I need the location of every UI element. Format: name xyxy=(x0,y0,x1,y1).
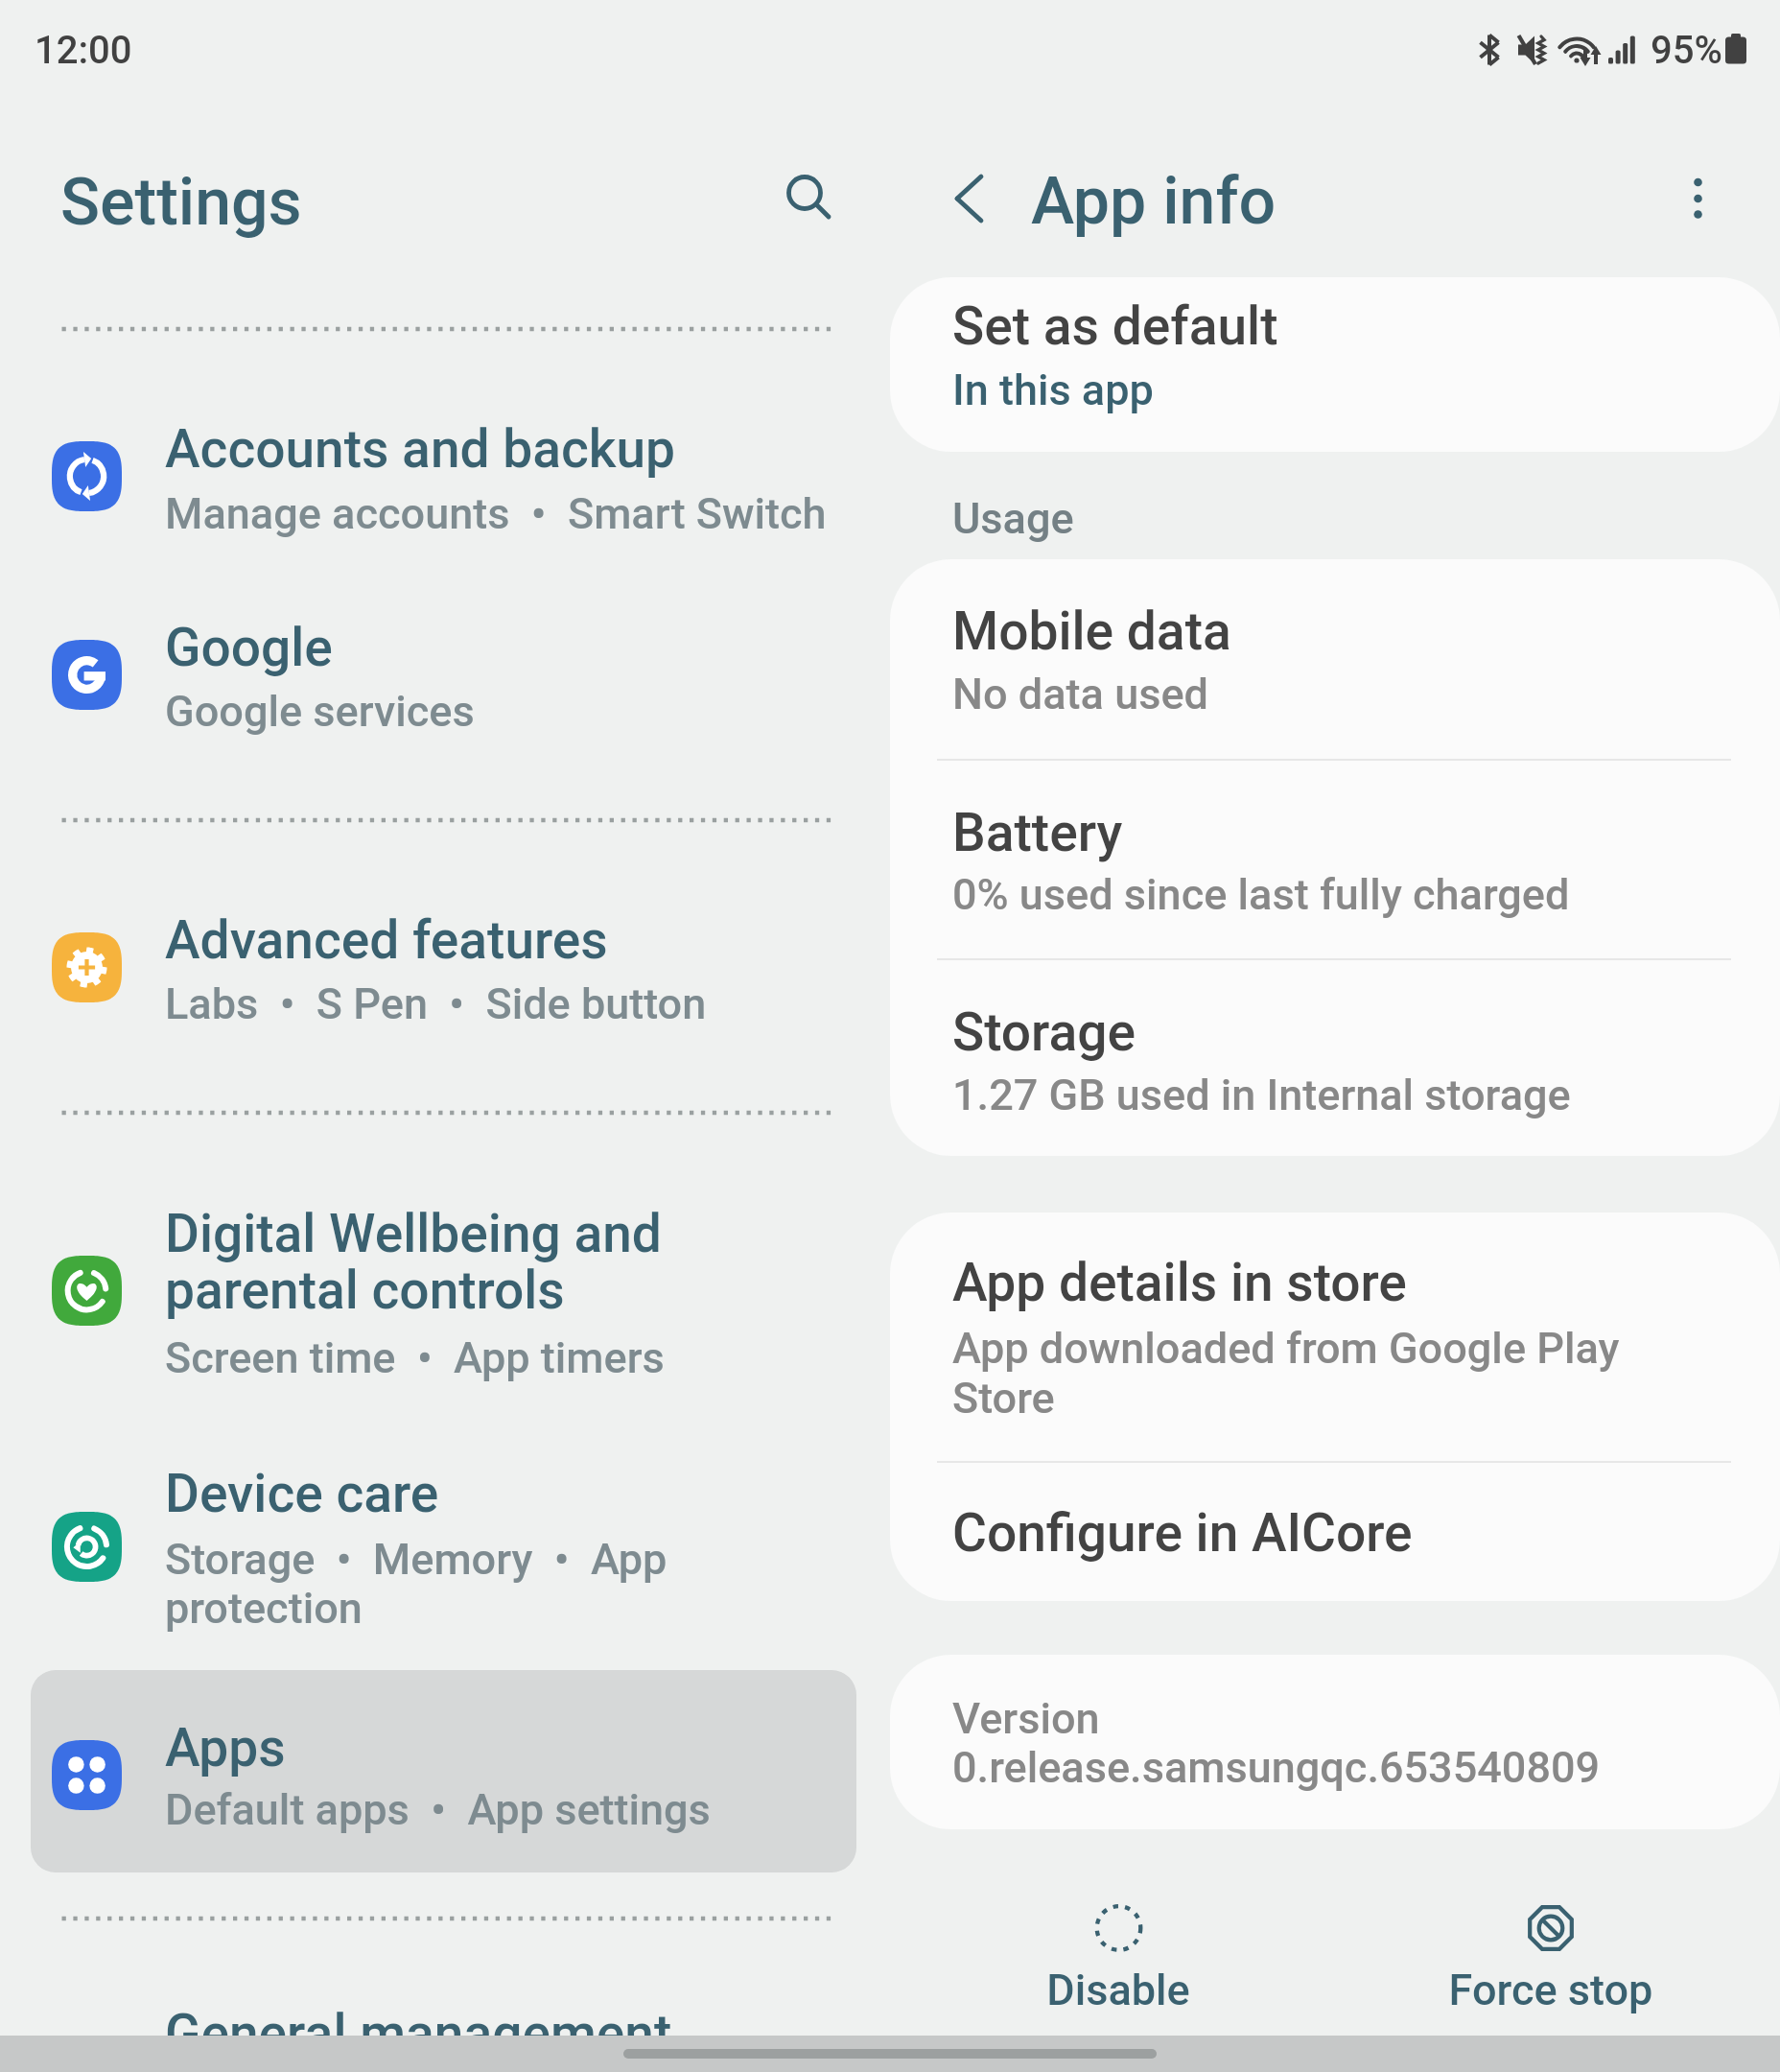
staticText: 0% used since last fully charged xyxy=(952,869,1570,920)
button[interactable]: More options xyxy=(1658,158,1739,239)
staticText: Screen time • App timers xyxy=(165,1332,665,1383)
staticText: Google services xyxy=(165,686,475,737)
staticText: Storage xyxy=(952,1001,1136,1063)
staticText: App info xyxy=(1031,163,1276,240)
button[interactable]: Force stop xyxy=(1391,1880,1710,2034)
staticText: Storage • Memory • App xyxy=(165,1534,667,1585)
staticText: Usage xyxy=(952,493,1074,544)
button[interactable] xyxy=(31,607,856,746)
staticText: Battery xyxy=(952,802,1123,863)
staticText: Manage accounts • Smart Switch xyxy=(165,488,827,539)
staticText: Digital Wellbeing and xyxy=(165,1203,662,1264)
staticText: Set as default xyxy=(952,295,1278,357)
staticText: Google xyxy=(165,617,333,678)
staticText: 0.release.samsungqc.653540809 xyxy=(952,1742,1601,1793)
staticText: Store xyxy=(952,1373,1055,1424)
staticText: Settings xyxy=(60,164,302,241)
button[interactable] xyxy=(31,1995,856,2036)
button[interactable] xyxy=(890,958,1780,1156)
staticText: App details in store xyxy=(952,1252,1407,1313)
staticText: 95% xyxy=(1651,28,1722,73)
staticText: General management xyxy=(165,2003,672,2064)
button[interactable] xyxy=(31,1193,856,1393)
button[interactable]: Disable xyxy=(959,1880,1278,2034)
button[interactable] xyxy=(31,409,856,548)
staticText: 12:00 xyxy=(35,28,132,73)
button[interactable] xyxy=(890,277,1780,452)
staticText: Advanced features xyxy=(165,909,608,971)
staticText: Disable xyxy=(965,1965,1272,2016)
staticText: App downloaded from Google Play xyxy=(952,1323,1620,1374)
button[interactable] xyxy=(890,759,1780,958)
button[interactable] xyxy=(31,1453,856,1643)
staticText: parental controls xyxy=(165,1260,565,1321)
button[interactable] xyxy=(890,559,1780,759)
staticText: Default apps • App settings xyxy=(165,1784,711,1835)
staticText: 1.27 GB used in Internal storage xyxy=(952,1070,1571,1120)
staticText: protection xyxy=(165,1583,363,1634)
staticText: In this app xyxy=(952,365,1154,415)
staticText: Configure in AICore xyxy=(952,1502,1413,1564)
button[interactable] xyxy=(31,900,856,1039)
button[interactable]: Search xyxy=(764,153,845,233)
staticText: No data used xyxy=(952,669,1208,719)
staticText: Accounts and backup xyxy=(165,418,676,480)
staticText: Mobile data xyxy=(952,600,1231,662)
staticText: Version xyxy=(952,1693,1100,1744)
button[interactable] xyxy=(890,1461,1780,1601)
button[interactable]: Back xyxy=(928,158,1009,239)
staticText: Force stop xyxy=(1397,1965,1704,2016)
staticText: Labs • S Pen • Side button xyxy=(165,978,707,1029)
staticText: Device care xyxy=(165,1463,439,1524)
button[interactable] xyxy=(890,1213,1780,1461)
button[interactable] xyxy=(31,1670,856,1872)
staticText: Apps xyxy=(165,1717,286,1778)
